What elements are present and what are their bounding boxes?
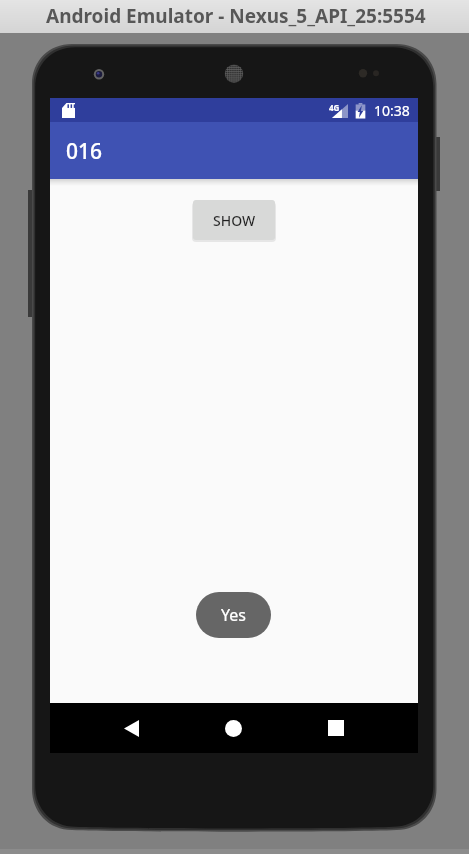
button[interactable]: SHOW <box>193 200 275 240</box>
staticText: 10:38 <box>374 101 410 120</box>
button[interactable]: Home <box>209 703 258 753</box>
staticText: 4G <box>329 102 340 113</box>
button[interactable]: Recent apps <box>311 703 360 753</box>
staticText: Yes <box>221 604 246 626</box>
button[interactable]: Yes <box>196 592 271 638</box>
staticText: 016 <box>66 137 103 166</box>
button[interactable]: Back <box>107 703 156 753</box>
staticText: SHOW <box>213 211 256 230</box>
staticText: Android Emulator - Nexus_5_API_25:5554 <box>46 3 426 29</box>
